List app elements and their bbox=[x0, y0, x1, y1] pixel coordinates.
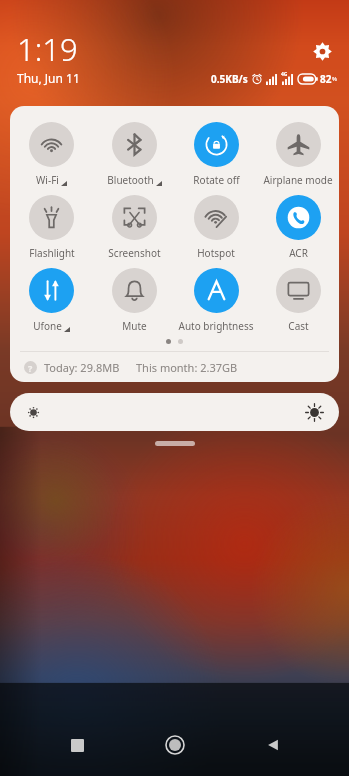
staticText: Screenshot bbox=[108, 246, 161, 260]
button[interactable]: Flashlight bbox=[10, 191, 93, 264]
button[interactable]: ACR bbox=[257, 191, 339, 264]
button[interactable]: Auto brightness bbox=[175, 264, 257, 337]
staticText: ACR bbox=[289, 246, 308, 260]
button[interactable]: Settings bbox=[309, 38, 335, 64]
staticText: Airplane mode bbox=[263, 173, 333, 187]
button[interactable]: Hotspot bbox=[175, 191, 257, 264]
button[interactable]: Home bbox=[153, 723, 197, 767]
staticText: 1:19 bbox=[17, 28, 78, 70]
button[interactable]: Rotate off bbox=[175, 118, 257, 191]
button[interactable]: Mute bbox=[93, 264, 175, 337]
button[interactable]: Ufone bbox=[10, 264, 93, 337]
button[interactable]: Airplane mode bbox=[257, 118, 339, 191]
staticText: % bbox=[332, 75, 337, 83]
staticText: 4G bbox=[281, 71, 288, 78]
button[interactable]: Wi-Fi bbox=[10, 118, 93, 191]
staticText: Cast bbox=[288, 319, 309, 333]
staticText: Auto brightness bbox=[178, 319, 254, 333]
button[interactable]: Cast bbox=[257, 264, 339, 337]
staticText: Hotspot bbox=[197, 246, 235, 260]
staticText: Today: 29.8MB bbox=[44, 360, 120, 375]
staticText: Flashlight bbox=[29, 246, 75, 260]
staticText: Rotate off bbox=[193, 173, 240, 187]
button[interactable]: Bluetooth bbox=[93, 118, 175, 191]
button[interactable]: Brightness bbox=[10, 393, 339, 431]
staticText: Bluetooth bbox=[107, 173, 154, 187]
button[interactable]: Back bbox=[251, 723, 295, 767]
staticText: Mute bbox=[122, 319, 147, 333]
staticText: 0.5KB/s bbox=[211, 72, 248, 86]
staticText: Ufone bbox=[33, 319, 62, 333]
staticText: 82 bbox=[320, 72, 332, 86]
button[interactable]: Recents bbox=[55, 723, 99, 767]
button[interactable]: Screenshot bbox=[93, 191, 175, 264]
staticText: Wi-Fi bbox=[36, 173, 59, 187]
staticText: ? bbox=[28, 362, 33, 374]
staticText: This month: 2.37GB bbox=[136, 360, 238, 375]
staticText: Thu, Jun 11 bbox=[17, 70, 80, 86]
